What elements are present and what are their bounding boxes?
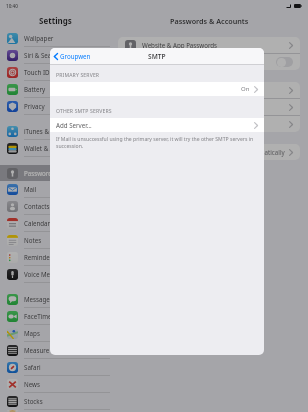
staticText: Reminders bbox=[24, 253, 56, 261]
button[interactable]: Battery bbox=[0, 81, 110, 97]
staticText: Settings bbox=[39, 15, 72, 26]
staticText: Maps bbox=[24, 329, 40, 337]
button[interactable] bbox=[118, 116, 300, 132]
staticText: Messages bbox=[24, 295, 53, 303]
button[interactable]: News bbox=[0, 376, 110, 392]
staticText: Website & App Passwords bbox=[142, 41, 218, 49]
staticText: Automatically bbox=[245, 148, 285, 156]
button[interactable]: Voice Memos bbox=[0, 266, 110, 282]
button[interactable]: Privacy bbox=[0, 98, 110, 114]
staticText: OTHER SMTP SERVERS bbox=[56, 108, 112, 115]
staticText: Passwords &… bbox=[24, 169, 66, 177]
button[interactable]: Website & App Passwords bbox=[118, 37, 300, 53]
button[interactable]: Touch ID & P bbox=[0, 64, 110, 80]
button[interactable]: Maps bbox=[0, 325, 110, 341]
staticText: Battery bbox=[24, 85, 46, 93]
staticText: Wallet & App… bbox=[24, 144, 67, 152]
button[interactable]: AutoFill Passwords bbox=[118, 54, 300, 70]
staticText: Measure bbox=[24, 346, 50, 354]
staticText: If Mail is unsuccessful using the primar… bbox=[56, 136, 258, 150]
staticText: PRIMARY SERVER bbox=[56, 72, 100, 79]
button[interactable]: On bbox=[50, 82, 264, 96]
button[interactable]: Calendar bbox=[0, 215, 110, 231]
staticText: News bbox=[24, 380, 40, 388]
staticText: Siri & Search bbox=[24, 51, 61, 59]
button[interactable] bbox=[118, 99, 300, 115]
button[interactable]: Mail bbox=[0, 181, 110, 197]
button[interactable]: iTunes & App… bbox=[0, 123, 110, 139]
button[interactable]: AutoFill Passwords toggle bbox=[276, 57, 293, 67]
staticText: Mail bbox=[24, 185, 37, 193]
button[interactable]: Reminders bbox=[0, 249, 110, 265]
button[interactable]: Safari bbox=[0, 359, 110, 375]
staticText: Stocks bbox=[24, 397, 43, 405]
button[interactable]: Wallpaper bbox=[0, 30, 110, 46]
staticText: Privacy bbox=[24, 102, 45, 110]
button[interactable]: Measure bbox=[0, 342, 110, 358]
button[interactable]: Siri & Search bbox=[0, 47, 110, 63]
staticText: Groupwen bbox=[60, 52, 91, 60]
button[interactable]: Passwords &… bbox=[0, 165, 110, 181]
staticText: On bbox=[241, 85, 250, 93]
staticText: SMTP bbox=[148, 52, 166, 61]
staticText: Wallpaper bbox=[24, 34, 54, 42]
button[interactable]: Fetch New Data bbox=[118, 144, 300, 160]
staticText: Calendar bbox=[24, 219, 51, 227]
button[interactable]: Stocks bbox=[0, 393, 110, 409]
button[interactable]: Groupwen bbox=[50, 49, 98, 63]
staticText: iTunes & App… bbox=[24, 127, 68, 135]
button[interactable]: Home bbox=[0, 410, 110, 412]
staticText: FaceTime bbox=[24, 312, 52, 320]
staticText: Add Server… bbox=[56, 121, 92, 129]
staticText: AutoFill Passwords bbox=[142, 58, 197, 66]
staticText: Notes bbox=[24, 236, 42, 244]
button[interactable]: Contacts bbox=[0, 198, 110, 214]
button[interactable] bbox=[118, 82, 300, 98]
staticText: 10:40 bbox=[6, 3, 18, 9]
button[interactable]: Wallet & App… bbox=[0, 140, 110, 156]
staticText: Voice Memos bbox=[24, 270, 63, 278]
staticText: Safari bbox=[24, 363, 41, 371]
staticText: Touch ID & P bbox=[24, 68, 62, 76]
staticText: Contacts bbox=[24, 202, 50, 210]
button[interactable]: FaceTime bbox=[0, 308, 110, 324]
button[interactable]: Notes bbox=[0, 232, 110, 248]
staticText: Passwords & Accounts bbox=[170, 16, 249, 26]
button[interactable]: Add Server… bbox=[50, 118, 264, 132]
button[interactable]: Messages bbox=[0, 291, 110, 307]
